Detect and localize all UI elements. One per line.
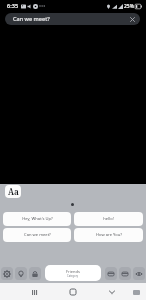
staticText: 6:35 bbox=[7, 2, 19, 10]
button[interactable]: Settings bbox=[1, 267, 13, 280]
button[interactable]: Location bbox=[15, 267, 27, 280]
staticText: Friends bbox=[66, 269, 80, 274]
button[interactable]: Home bbox=[66, 285, 80, 299]
button[interactable]: Aa bbox=[5, 185, 21, 198]
staticText: hello! bbox=[103, 216, 114, 222]
staticText: Can we meet? bbox=[24, 232, 51, 238]
staticText: How are You? bbox=[96, 232, 122, 238]
button[interactable]: Hide keyboard bbox=[105, 285, 119, 299]
button[interactable]: Clipboard bbox=[105, 267, 117, 280]
button[interactable]: Hey, What's Up? bbox=[3, 212, 71, 226]
button[interactable]: Can we meet? bbox=[5, 13, 140, 25]
button[interactable]: Can we meet? bbox=[3, 228, 71, 242]
staticText: Aa bbox=[8, 186, 19, 197]
button[interactable]: Theme bbox=[119, 267, 131, 280]
staticText: Can we meet? bbox=[13, 15, 50, 23]
button[interactable]: Switch keyboard bbox=[129, 285, 143, 299]
button[interactable]: Dismiss suggestion bbox=[128, 15, 137, 24]
button[interactable]: hello! bbox=[74, 212, 143, 226]
button[interactable]: How are You? bbox=[74, 228, 143, 242]
staticText: 25% bbox=[124, 3, 134, 10]
button[interactable]: Friends bbox=[45, 265, 101, 281]
staticText: Hey, What's Up? bbox=[22, 216, 53, 222]
button[interactable]: Preview bbox=[133, 267, 145, 280]
button[interactable]: Recents bbox=[27, 285, 41, 299]
button[interactable]: Secure bbox=[29, 267, 41, 280]
staticText: Category bbox=[67, 274, 79, 278]
